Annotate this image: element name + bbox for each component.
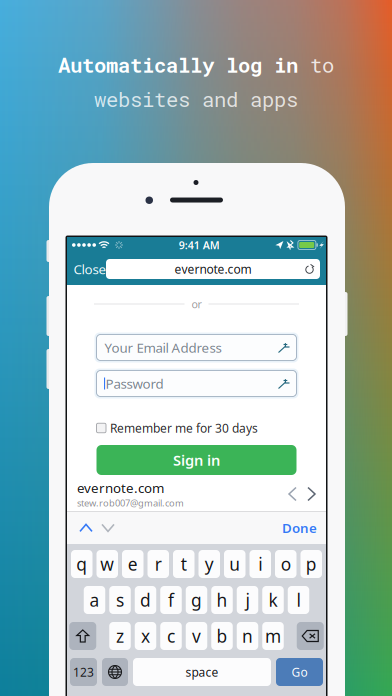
- button[interactable]: w: [96, 550, 118, 578]
- staticText: Go: [291, 664, 307, 680]
- staticText: r: [155, 552, 162, 575]
- staticText: z: [116, 624, 124, 647]
- staticText: i: [258, 552, 262, 575]
- button[interactable]: Previous field: [75, 514, 97, 541]
- staticText: or: [191, 297, 201, 311]
- button[interactable]: Done: [282, 511, 317, 545]
- button[interactable]: t: [173, 550, 194, 578]
- button[interactable]: space: [133, 658, 271, 686]
- staticText: e: [128, 552, 138, 575]
- button[interactable]: k: [262, 586, 284, 614]
- button[interactable]: g: [186, 586, 207, 614]
- staticText: 123: [73, 664, 94, 680]
- button[interactable]: i: [249, 550, 271, 578]
- button[interactable]: Remember me for 30 days: [96, 422, 296, 434]
- button[interactable]: 123: [70, 658, 97, 686]
- button[interactable]: q: [71, 550, 92, 578]
- staticText: evernote.com: [174, 261, 251, 277]
- staticText: m: [265, 624, 281, 647]
- button[interactable]: u: [224, 550, 245, 578]
- button[interactable]: Go: [276, 658, 323, 686]
- button[interactable]: Delete: [297, 622, 324, 650]
- button[interactable]: l: [288, 586, 309, 614]
- button[interactable]: y: [198, 550, 220, 578]
- staticText: Automatically log in: [58, 51, 298, 78]
- button[interactable]: a: [84, 586, 105, 614]
- button[interactable]: j: [237, 586, 258, 614]
- button[interactable]: c: [160, 622, 182, 650]
- staticText: l: [296, 588, 300, 611]
- button[interactable]: Previous suggestion: [281, 481, 304, 506]
- staticText: s: [116, 588, 124, 611]
- button[interactable]: z: [109, 622, 131, 650]
- staticText: a: [89, 588, 99, 611]
- staticText: x: [141, 624, 150, 647]
- staticText: Your Email Address: [104, 339, 221, 356]
- staticText: w: [100, 552, 114, 575]
- button[interactable]: v: [186, 622, 207, 650]
- staticText: b: [216, 624, 227, 647]
- staticText: to: [298, 51, 334, 78]
- button[interactable]: h: [211, 586, 233, 614]
- button[interactable]: b: [211, 622, 233, 650]
- button[interactable]: Switch keyboard: [102, 658, 128, 686]
- staticText: u: [229, 552, 240, 575]
- button[interactable]: n: [237, 622, 258, 650]
- button[interactable]: s: [109, 586, 131, 614]
- staticText: Sign in: [173, 450, 220, 470]
- button[interactable]: x: [135, 622, 156, 650]
- staticText: q: [76, 552, 87, 575]
- staticText: p: [306, 552, 317, 575]
- staticText: j: [245, 588, 249, 611]
- button[interactable]: e: [122, 550, 143, 578]
- button[interactable]: Next suggestion: [304, 481, 319, 506]
- button[interactable]: d: [135, 586, 156, 614]
- staticText: f: [168, 588, 174, 611]
- button[interactable]: r: [147, 550, 169, 578]
- staticText: 9:41 AM: [179, 238, 220, 252]
- button[interactable]: evernote.com: [106, 259, 320, 279]
- button[interactable]: f: [160, 586, 182, 614]
- staticText: Done: [282, 519, 317, 537]
- button[interactable]: Sign in: [96, 445, 296, 475]
- staticText: v: [192, 624, 201, 647]
- staticText: h: [216, 588, 227, 611]
- staticText: y: [205, 552, 214, 575]
- staticText: t: [181, 552, 187, 575]
- staticText: space: [185, 664, 218, 680]
- button[interactable]: o: [275, 550, 296, 578]
- staticText: evernote.com: [77, 479, 164, 497]
- staticText: Password: [106, 375, 164, 392]
- staticText: n: [242, 624, 253, 647]
- staticText: Close: [73, 260, 106, 278]
- staticText: stew.rob007@gmail.com: [77, 497, 184, 509]
- button[interactable]: p: [300, 550, 322, 578]
- button[interactable]: Next field: [97, 514, 119, 541]
- staticText: o: [281, 552, 291, 575]
- button[interactable]: Close: [74, 257, 106, 281]
- staticText: c: [167, 624, 175, 647]
- staticText: g: [191, 588, 202, 611]
- staticText: k: [268, 588, 277, 611]
- staticText: Remember me for 30 days: [110, 420, 258, 436]
- staticText: websites and apps: [94, 85, 298, 113]
- staticText: d: [140, 588, 151, 611]
- button[interactable]: Shift: [69, 622, 96, 650]
- button[interactable]: m: [262, 622, 284, 650]
